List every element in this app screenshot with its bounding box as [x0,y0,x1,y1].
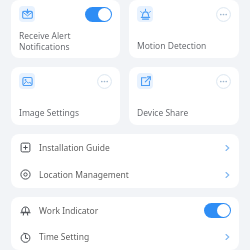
button[interactable]: Device Share options [129,67,239,125]
staticText: Time Setting [39,231,90,243]
button[interactable]: Toggle on [11,0,120,58]
staticText: Motion Detection [137,40,207,52]
staticText: Receive Alert Notifications [19,30,71,52]
button[interactable]: Installation Guide [11,134,239,161]
button[interactable]: Image Settings options [11,67,120,125]
button[interactable]: Time Setting [11,224,239,250]
other: Open [223,169,231,181]
button[interactable]: Device Share options [216,74,231,89]
button[interactable]: Location Management [11,161,239,188]
staticText: Work Indicator [39,205,99,217]
staticText: Device Share [137,107,189,119]
button[interactable]: Image Settings options [97,74,112,89]
staticText: Installation Guide [39,142,110,154]
button[interactable]: Work Indicator [11,197,239,224]
staticText: Location Management [39,169,129,181]
button[interactable]: Toggle on [85,7,112,22]
other: Open [223,231,231,243]
staticText: Image Settings [19,107,80,119]
other: Open [223,142,231,154]
button[interactable]: Motion Detection options [216,7,231,22]
button[interactable]: Toggle on [204,203,231,218]
button[interactable]: Motion Detection options [129,0,239,58]
